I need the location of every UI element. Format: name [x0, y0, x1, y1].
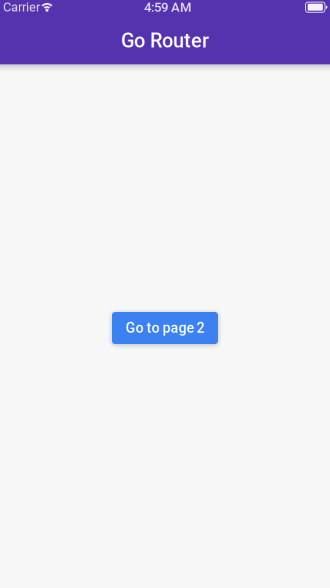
- staticText: Go to page 2: [125, 320, 204, 336]
- staticText: Carrier: [3, 0, 40, 15]
- staticText: 4:59 AM: [144, 0, 191, 15]
- staticText: Go Router: [121, 29, 209, 52]
- button[interactable]: Go to page 2: [112, 312, 218, 344]
